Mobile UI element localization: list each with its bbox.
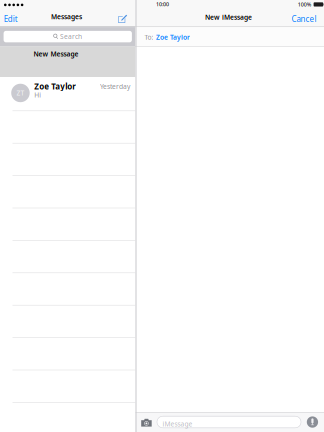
staticText: ZT <box>16 88 24 97</box>
staticText: Search <box>60 32 82 41</box>
staticText: 10:00 <box>156 1 169 8</box>
button[interactable]: ZT <box>0 77 135 111</box>
staticText: Messages <box>51 12 82 21</box>
button[interactable]: Cancel <box>287 10 320 27</box>
staticText: To: <box>144 33 153 42</box>
button[interactable]: New Message <box>115 11 132 27</box>
staticText: New Message <box>33 49 78 58</box>
staticText: Zoe Taylor <box>34 81 76 92</box>
staticText: Yesterday <box>100 82 130 91</box>
staticText: Edit <box>4 13 18 24</box>
staticText: iMessage <box>162 419 192 428</box>
staticText: Hi <box>34 90 41 99</box>
staticText: Zoe Taylor <box>156 33 190 42</box>
button[interactable]: Zoe Taylor <box>156 33 190 42</box>
button[interactable]: Edit <box>0 10 22 27</box>
button[interactable]: Take photo <box>138 416 155 430</box>
button[interactable]: Record audio <box>307 416 318 428</box>
staticText: Cancel <box>291 13 316 24</box>
staticText: New iMessage <box>205 13 252 22</box>
staticText: 100% <box>298 1 312 8</box>
